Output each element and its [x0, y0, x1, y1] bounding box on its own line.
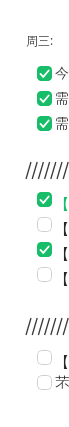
button[interactable]: 需要 [0, 111, 69, 136]
button[interactable]: 【备 [0, 345, 69, 370]
button[interactable]: 【其 [0, 262, 69, 287]
staticText: 周三: [26, 32, 54, 48]
staticText: 【其 [55, 271, 69, 289]
staticText: 【工 [55, 196, 69, 214]
staticText: 需要 [55, 115, 69, 133]
button[interactable]: 【学 [0, 212, 69, 237]
staticText: 【生 [55, 246, 69, 264]
staticText: 今天 [55, 65, 69, 83]
button[interactable]: 【生 [0, 237, 69, 262]
staticText: 需要 [55, 90, 69, 108]
button[interactable]: 芣苢 [0, 370, 69, 395]
staticText: 【学 [55, 221, 69, 239]
button[interactable]: 【工 [0, 187, 69, 212]
button[interactable]: 今天 [0, 61, 69, 86]
button[interactable]: 需要 [0, 86, 69, 111]
staticText: 【备 [55, 354, 69, 372]
staticText: 芣苢 [55, 374, 69, 392]
